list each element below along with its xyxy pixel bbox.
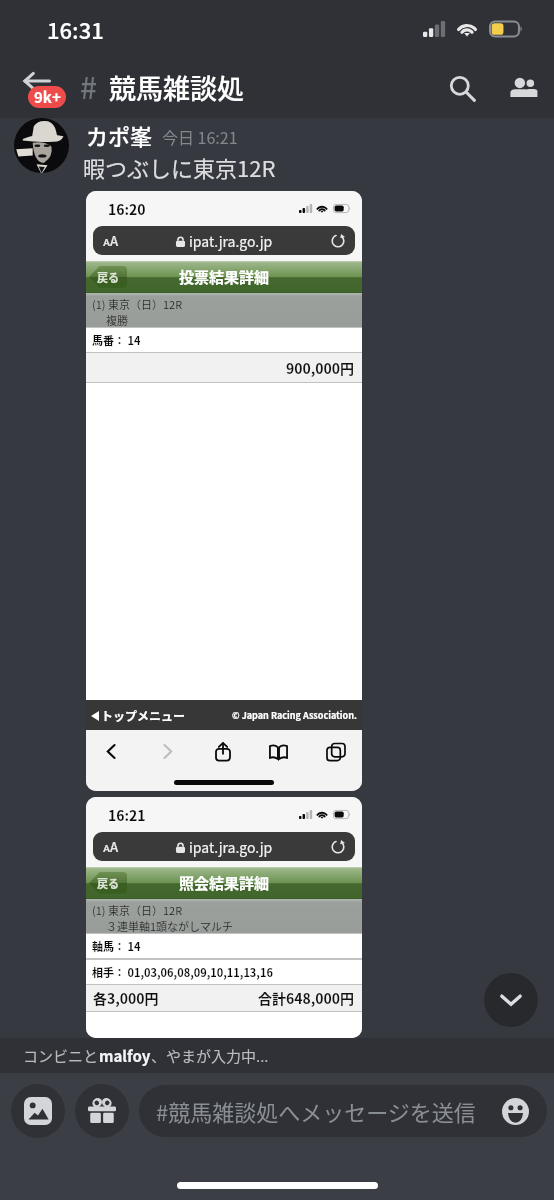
button[interactable]: #競馬雑談処へメッセージを送信 <box>139 1085 547 1137</box>
button[interactable] <box>14 118 69 173</box>
staticText: 競馬雑談処 <box>109 68 244 107</box>
staticText: 戻る <box>97 875 119 891</box>
staticText: 16:31 <box>47 13 104 45</box>
staticText: 16:21 <box>108 805 146 825</box>
staticText: 16:20 <box>108 199 146 219</box>
staticText: © Japan Racing Association. <box>232 709 357 722</box>
button[interactable]: Attach image <box>11 1084 65 1138</box>
staticText: #競馬雑談処へメッセージを送信 <box>156 1095 476 1127</box>
staticText: 14 <box>125 938 141 954</box>
button[interactable]: Screenshot attachment <box>86 191 362 791</box>
staticText: 投票結果詳細 <box>179 266 270 288</box>
staticText: ３連単軸1頭ながしマルチ <box>106 918 234 933</box>
staticText: 暇つぶしに東京12R <box>83 151 276 183</box>
staticText: malfoy <box>99 1045 151 1067</box>
button[interactable]: Back <box>0 57 70 118</box>
staticText: 01,03,06,08,09,10,11,13,16 <box>125 964 273 980</box>
staticText: 9k+ <box>34 86 61 108</box>
staticText: 合計648,000円 <box>258 988 355 1008</box>
staticText: カポ峯 <box>86 119 153 151</box>
staticText: トップメニュー <box>101 707 186 724</box>
staticText: 複勝 <box>106 312 128 327</box>
staticText: 14 <box>125 332 141 348</box>
button[interactable]: Members <box>492 57 554 118</box>
button[interactable]: Send a gift <box>75 1084 129 1138</box>
staticText: # <box>80 64 98 107</box>
staticText: ipat.jra.go.jp <box>189 837 273 857</box>
staticText: 、やまが入力中... <box>151 1045 269 1067</box>
button[interactable]: Scroll to bottom <box>484 973 538 1027</box>
staticText: 相手： <box>92 964 125 980</box>
staticText: 軸馬： <box>92 938 125 954</box>
staticText: コンビニと <box>23 1045 99 1067</box>
button[interactable]: Screenshot attachment <box>86 797 362 1038</box>
staticText: 馬番： <box>92 332 125 348</box>
staticText: 照会結果詳細 <box>179 872 270 894</box>
button[interactable]: Search <box>432 58 492 118</box>
staticText: ipat.jra.go.jp <box>189 231 273 251</box>
staticText: ᴀA <box>103 837 119 856</box>
staticText: (1) 東京（日）12R <box>92 902 183 918</box>
staticText: (1) 東京（日）12R <box>92 296 183 312</box>
staticText: 900,000円 <box>286 358 355 378</box>
staticText: 各3,000円 <box>93 988 159 1008</box>
staticText: 戻る <box>97 269 119 285</box>
staticText: ᴀA <box>103 231 119 250</box>
staticText: 今日 16:21 <box>162 125 238 148</box>
